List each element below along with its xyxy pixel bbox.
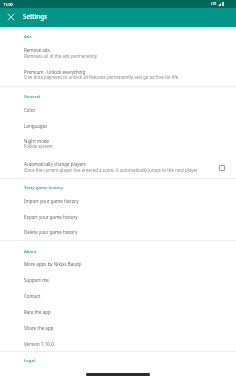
staticText: Removes all of the ads permanently xyxy=(24,53,97,59)
staticText: Color xyxy=(24,107,36,113)
staticText: Delete your game history xyxy=(24,229,78,235)
staticText: Yatzy game history xyxy=(24,184,63,190)
button[interactable]: Delete your game history xyxy=(0,224,236,240)
staticText: About xyxy=(24,248,37,254)
staticText: Remove ads xyxy=(24,47,50,53)
staticText: Contact xyxy=(24,293,41,299)
staticText: One time payment to unlock all features … xyxy=(24,74,179,80)
button[interactable]: Remove ads xyxy=(0,42,236,64)
button[interactable]: Close xyxy=(2,8,19,25)
staticText: Once the current player has entered a sc… xyxy=(24,167,198,173)
staticText: Premium · Unlock everything xyxy=(24,69,86,75)
other: Automatically change players toggle xyxy=(219,165,225,171)
button[interactable]: Export your game history xyxy=(0,209,236,225)
staticText: Import your game history xyxy=(24,198,79,204)
staticText: Rate the app xyxy=(24,309,51,315)
staticText: Settings xyxy=(23,12,48,20)
staticText: More apps by Niklas Baudy xyxy=(24,261,82,267)
staticText: Version 1.10.0 xyxy=(24,341,54,347)
staticText: Legal xyxy=(24,357,36,363)
button[interactable]: Contact xyxy=(0,288,236,304)
staticText: Follow system xyxy=(24,143,53,149)
button[interactable]: Night mode xyxy=(0,133,236,155)
staticText: Ads xyxy=(24,33,32,39)
button[interactable]: More apps by Niklas Baudy xyxy=(0,256,236,272)
button[interactable]: Rate the app xyxy=(0,304,236,320)
staticText: 11:00 xyxy=(3,2,13,7)
button[interactable]: Version 1.10.0 xyxy=(0,336,236,352)
button[interactable]: Import your game history xyxy=(0,193,236,209)
button[interactable]: Languages xyxy=(0,118,236,134)
staticText: Automatically change players xyxy=(24,161,87,167)
staticText: Share the app xyxy=(24,325,54,331)
button[interactable]: Color xyxy=(0,102,236,118)
staticText: Export your game history xyxy=(24,214,78,220)
staticText: Support me xyxy=(24,277,49,283)
button[interactable]: Support me xyxy=(0,272,236,288)
staticText: Languages xyxy=(24,123,48,129)
button[interactable]: Automatically change players xyxy=(0,156,236,178)
staticText: Night mode xyxy=(24,138,50,144)
button[interactable]: Premium · Unlock everything xyxy=(0,64,236,86)
staticText: General xyxy=(24,93,41,99)
staticText: LTE xyxy=(211,2,217,6)
button[interactable]: Share the app xyxy=(0,320,236,336)
